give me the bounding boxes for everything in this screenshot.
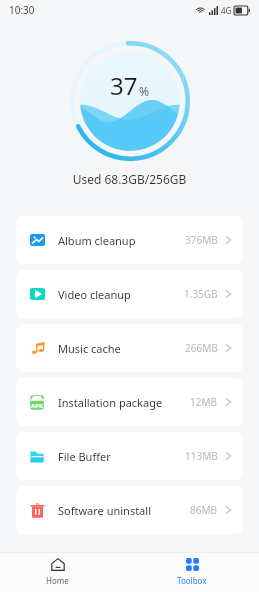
staticText: Toolbox bbox=[177, 575, 207, 586]
staticText: Installation package bbox=[58, 395, 163, 410]
staticText: File Buffer bbox=[58, 449, 111, 464]
staticText: 86MB bbox=[190, 503, 218, 517]
staticText: 376MB bbox=[185, 233, 218, 247]
button[interactable]: APK bbox=[16, 378, 243, 426]
staticText: Album cleanup bbox=[58, 233, 136, 248]
button[interactable]: Album cleanup bbox=[16, 216, 243, 264]
staticText: Software uninstall bbox=[58, 503, 151, 518]
staticText: Video cleanup bbox=[58, 287, 131, 302]
staticText: 266MB bbox=[185, 341, 218, 355]
staticText: 4G bbox=[221, 5, 232, 16]
staticText: APK bbox=[31, 402, 43, 410]
button[interactable]: Music cache bbox=[16, 324, 243, 372]
staticText: 12MB bbox=[190, 395, 218, 409]
button[interactable]: Video cleanup bbox=[16, 270, 243, 318]
staticText: Music cache bbox=[58, 341, 121, 356]
staticText: 37 bbox=[110, 69, 138, 102]
staticText: 10:30 bbox=[9, 3, 35, 17]
button[interactable]: Software uninstall bbox=[16, 486, 243, 534]
staticText: Home bbox=[46, 575, 69, 586]
button[interactable]: File Buffer bbox=[16, 432, 243, 480]
staticText: 113MB bbox=[185, 449, 218, 463]
button[interactable]: Toolbox bbox=[163, 553, 221, 591]
staticText: 1.35GB bbox=[184, 287, 218, 301]
staticText: % bbox=[139, 83, 149, 99]
button[interactable]: Home bbox=[32, 553, 83, 591]
staticText: Used 68.3GB/256GB bbox=[0, 171, 259, 187]
